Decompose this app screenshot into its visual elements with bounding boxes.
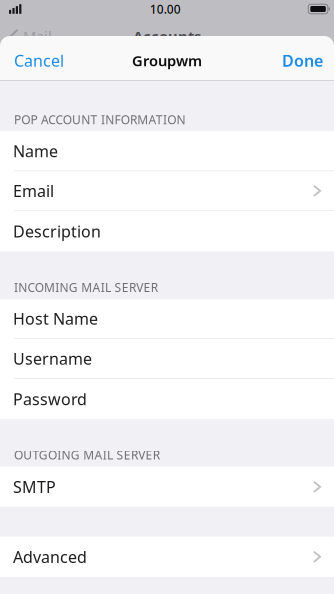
staticText: Host Name	[13, 308, 98, 329]
staticText: SMTP	[13, 476, 56, 497]
staticText: Email	[13, 180, 54, 201]
staticText: Password	[13, 388, 87, 409]
staticText: 10.00	[150, 1, 181, 17]
button[interactable]: Name	[0, 131, 334, 171]
button[interactable]: Cancel	[0, 38, 78, 82]
button[interactable]: Username	[0, 339, 334, 379]
button[interactable]: Password	[0, 379, 334, 419]
staticText: Username	[13, 348, 92, 369]
button[interactable]: Host Name	[0, 299, 334, 339]
staticText: Description	[13, 221, 101, 242]
staticText: Mail	[23, 26, 52, 46]
button[interactable]: Advanced	[0, 537, 334, 577]
button[interactable]: Email	[0, 171, 334, 211]
button[interactable]: Description	[0, 211, 334, 251]
staticText: OUTGOING MAIL SERVER	[14, 447, 160, 463]
button[interactable]: Mail	[9, 26, 52, 46]
staticText: Advanced	[13, 546, 87, 567]
staticText: Cancel	[14, 50, 64, 71]
staticText: INCOMING MAIL SERVER	[14, 279, 158, 295]
button[interactable]: Done	[268, 38, 334, 82]
staticText: POP ACCOUNT INFORMATION	[14, 112, 185, 127]
staticText: Name	[13, 140, 58, 161]
staticText: Groupwm	[132, 51, 202, 70]
button[interactable]: SMTP	[0, 467, 334, 507]
staticText: Done	[282, 50, 323, 71]
staticText: Accounts	[133, 26, 201, 46]
